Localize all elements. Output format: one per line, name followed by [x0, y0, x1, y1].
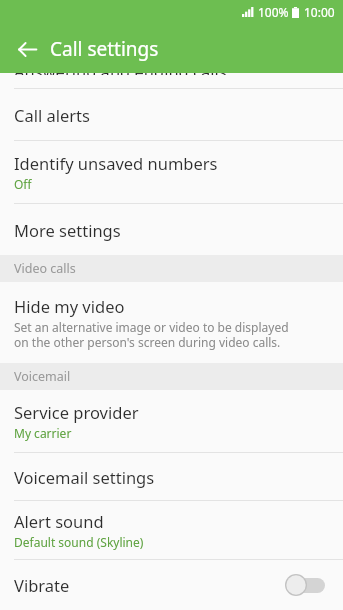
staticText: Voicemail [14, 368, 71, 385]
staticText: 100% [258, 4, 289, 20]
button[interactable]: Identify unsaved numbers [0, 141, 343, 203]
staticText: Default sound (Skyline) [14, 534, 144, 550]
button[interactable]: Hide my video [0, 282, 343, 363]
staticText: Voicemail settings [14, 466, 155, 488]
staticText: Hide my video [14, 295, 125, 317]
button[interactable]: Back [10, 32, 44, 66]
staticText: Video calls [14, 260, 76, 277]
staticText: Answering and ending calls [14, 73, 227, 75]
button[interactable]: Service provider [0, 390, 343, 452]
staticText: Call settings [50, 36, 159, 62]
staticText: Service provider [14, 401, 139, 423]
button[interactable]: More settings [0, 204, 343, 255]
staticText: More settings [14, 219, 121, 241]
staticText: Set an alternative image or video to be … [14, 319, 289, 350]
staticText: Off [14, 176, 32, 192]
button[interactable]: Vibrate toggle [285, 570, 329, 600]
staticText: Alert sound [14, 510, 104, 532]
staticText: Vibrate [14, 574, 70, 596]
button[interactable]: Call alerts [0, 89, 343, 140]
button[interactable]: Vibrate [0, 560, 343, 610]
button[interactable]: Alert sound [0, 501, 343, 559]
staticText: My carrier [14, 425, 72, 441]
staticText: Call alerts [14, 104, 90, 126]
staticText: Identify unsaved numbers [14, 152, 218, 174]
button[interactable]: Voicemail settings [0, 453, 343, 500]
staticText: 10:00 [304, 4, 335, 20]
